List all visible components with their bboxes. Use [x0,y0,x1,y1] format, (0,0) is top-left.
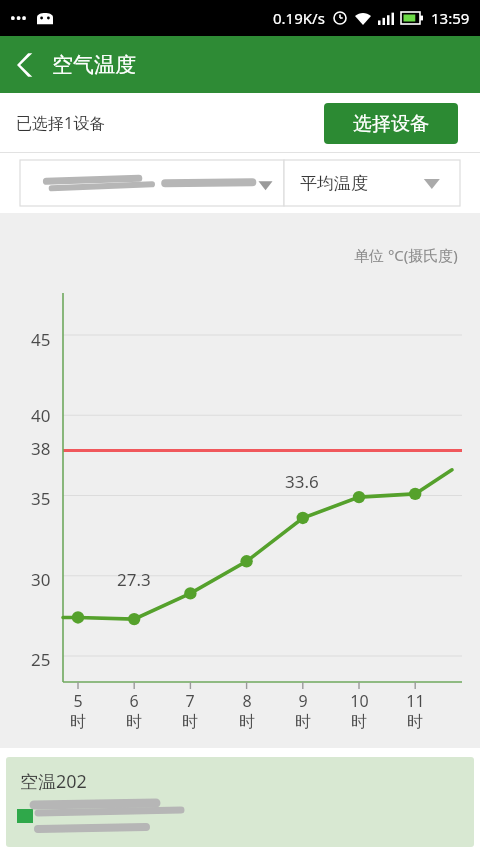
staticText: 40 [31,404,51,427]
staticText: 7 [185,690,195,712]
staticText: 10 [350,690,369,712]
staticText: 时 [182,712,198,732]
staticText: 6 [129,690,139,712]
staticText: 时 [295,712,311,732]
staticText: 13:59 [431,8,470,28]
staticText: 选择设备 [353,112,429,136]
staticText: 时 [126,712,142,732]
staticText: 33.6 [285,470,319,493]
staticText: 0.19K/s [273,8,325,28]
staticText: 38 [31,437,51,460]
staticText: 45 [31,328,51,351]
staticText: 时 [407,712,423,732]
button[interactable] [20,160,284,206]
staticText: 27.3 [117,568,151,591]
button[interactable]: 选择设备 [324,103,458,144]
staticText: 时 [351,712,367,732]
staticText: 已选择1设备 [16,112,106,134]
staticText: 平均温度 [300,173,368,194]
staticText: ••• [10,8,27,28]
staticText: 单位 °C(摄氏度) [354,245,458,265]
staticText: 空温202 [20,769,87,794]
staticText: 30 [31,568,51,591]
staticText: 空气温度 [52,52,136,78]
staticText: 8 [242,690,252,712]
staticText: 5 [73,690,83,712]
staticText: 时 [70,712,86,732]
button[interactable]: 平均温度 [284,160,460,206]
staticText: 35 [31,487,51,510]
staticText: 25 [31,648,51,671]
staticText: 11 [406,690,425,712]
staticText: 时 [239,712,255,732]
button[interactable]: 空温202 [6,757,474,847]
staticText: 9 [298,690,308,712]
button[interactable]: Back [0,39,52,91]
